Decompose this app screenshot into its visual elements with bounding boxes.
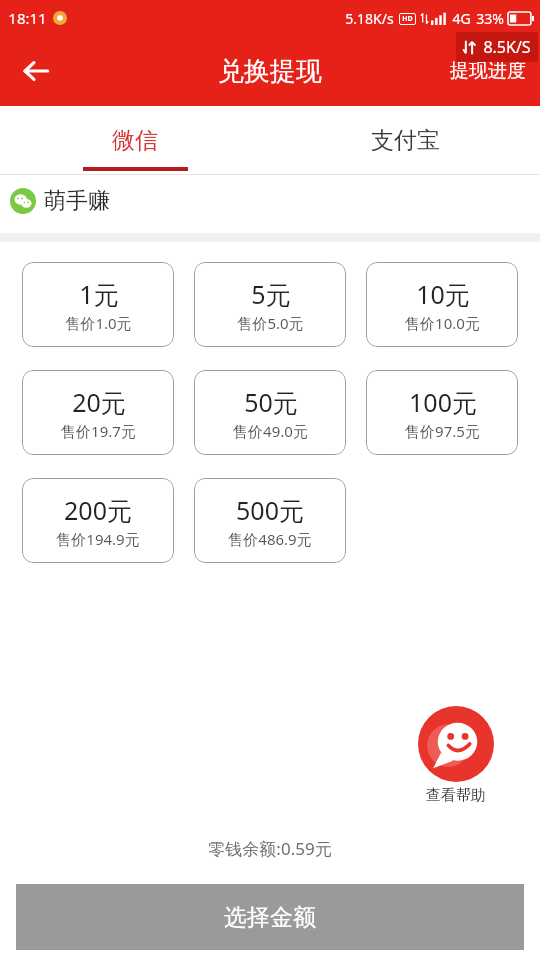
- staticText: 5.18K/s: [345, 9, 394, 28]
- button[interactable]: 查看帮助: [414, 706, 498, 805]
- staticText: 8.5K/S: [483, 36, 531, 58]
- staticText: 兑换提现: [218, 55, 322, 88]
- button[interactable]: 1元: [22, 262, 174, 347]
- button[interactable]: 50元: [194, 370, 346, 455]
- staticText: HD: [402, 14, 413, 24]
- staticText: 选择金额: [224, 903, 316, 932]
- staticText: 售价10.0元: [405, 313, 480, 333]
- staticText: 提现进度: [450, 59, 526, 83]
- staticText: 20元: [72, 385, 126, 419]
- button[interactable]: 返回: [10, 45, 62, 97]
- staticText: 萌手赚: [44, 187, 110, 215]
- staticText: 100元: [409, 385, 477, 419]
- button[interactable]: 20元: [22, 370, 174, 455]
- staticText: 售价194.9元: [56, 529, 140, 549]
- button[interactable]: 5元: [194, 262, 346, 347]
- other: 查看帮助: [418, 706, 494, 782]
- button[interactable]: 支付宝: [270, 106, 540, 175]
- staticText: 18:11: [8, 8, 47, 28]
- button[interactable]: 10元: [366, 262, 518, 347]
- staticText: 查看帮助: [426, 786, 486, 805]
- staticText: 33%: [476, 9, 504, 28]
- staticText: 售价486.9元: [228, 529, 312, 549]
- staticText: 售价97.5元: [405, 421, 480, 441]
- button[interactable]: 500元: [194, 478, 346, 563]
- staticText: 4G: [452, 9, 471, 28]
- staticText: 50元: [244, 385, 298, 419]
- button[interactable]: 提现进度: [444, 53, 532, 89]
- staticText: 零钱余额:0.59元: [208, 837, 332, 860]
- staticText: 1元: [79, 277, 119, 311]
- button[interactable]: 萌手赚: [0, 179, 540, 223]
- staticText: 5元: [251, 277, 291, 311]
- staticText: 微信: [112, 126, 158, 155]
- staticText: 200元: [64, 493, 132, 527]
- button[interactable]: 微信: [0, 106, 270, 175]
- button[interactable]: 选择金额: [16, 884, 524, 950]
- staticText: 售价49.0元: [233, 421, 308, 441]
- staticText: 售价19.7元: [61, 421, 136, 441]
- button[interactable]: 100元: [366, 370, 518, 455]
- staticText: 支付宝: [371, 126, 440, 155]
- staticText: 10元: [416, 277, 470, 311]
- staticText: 500元: [236, 493, 304, 527]
- button[interactable]: 200元: [22, 478, 174, 563]
- staticText: 售价1.0元: [65, 313, 132, 333]
- staticText: 售价5.0元: [237, 313, 304, 333]
